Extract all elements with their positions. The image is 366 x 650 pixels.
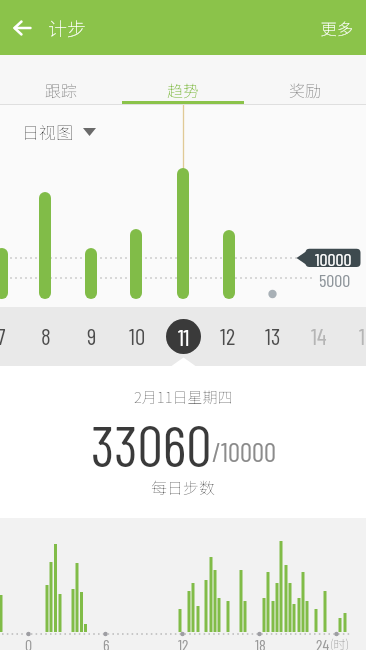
staticText: 跟踪 — [45, 78, 78, 101]
button[interactable]: 更多 — [317, 12, 358, 43]
staticText: 更多 — [321, 16, 354, 39]
staticText: 8 — [41, 322, 51, 350]
staticText: 13 — [265, 322, 281, 350]
staticText: 趋势 — [167, 78, 200, 101]
button[interactable]: 15 — [351, 321, 366, 351]
button[interactable]: 10 — [121, 321, 153, 351]
staticText: 24 — [316, 635, 330, 650]
button[interactable]: 11 — [166, 319, 201, 354]
staticText: 6 — [103, 635, 110, 650]
staticText: 14 — [311, 322, 327, 350]
button[interactable] — [0, 0, 44, 55]
staticText: 10000 — [315, 248, 352, 267]
staticText: 日视图 — [22, 119, 73, 144]
staticText: 10 — [129, 322, 146, 350]
staticText: 0 — [25, 635, 33, 650]
button[interactable]: 13 — [257, 321, 289, 351]
staticText: 7 — [0, 322, 6, 350]
button[interactable]: 14 — [303, 321, 335, 351]
staticText: 2月11日星期四 — [134, 386, 233, 408]
button[interactable]: 日视图 — [22, 119, 96, 144]
staticText: 5000 — [319, 269, 351, 288]
staticText: 计步 — [48, 14, 87, 42]
staticText: 9 — [87, 322, 97, 350]
button[interactable]: 7 — [0, 321, 17, 351]
button[interactable]: 12 — [212, 321, 244, 351]
button[interactable]: 趋势 — [122, 55, 244, 105]
staticText: 11 — [178, 323, 190, 351]
button[interactable]: 奖励 — [244, 55, 366, 105]
staticText: /10000 — [212, 435, 276, 467]
staticText: 奖励 — [289, 78, 322, 101]
button[interactable]: 8 — [30, 321, 62, 351]
staticText: 12 — [220, 322, 236, 350]
staticText: 33060 — [91, 410, 212, 478]
staticText: 18 — [255, 635, 266, 650]
button[interactable]: 跟踪 — [0, 55, 122, 105]
button[interactable]: 9 — [76, 321, 108, 351]
staticText: 每日步数 — [151, 475, 216, 498]
staticText: 15 — [359, 322, 366, 350]
staticText: (时) — [330, 635, 350, 650]
staticText: 12 — [178, 635, 189, 650]
